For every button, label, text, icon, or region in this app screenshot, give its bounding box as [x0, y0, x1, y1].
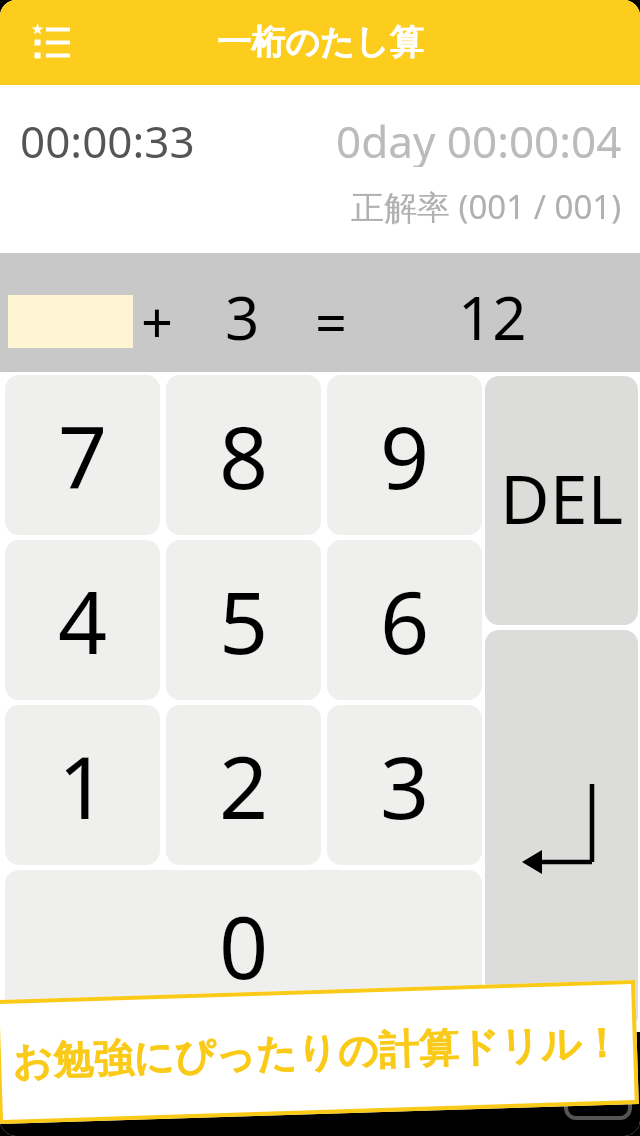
staticText: 一桁のたし算: [217, 21, 424, 64]
button[interactable]: 0: [5, 870, 482, 1020]
staticText: 6: [380, 562, 430, 679]
staticText: 00:00:33: [20, 111, 195, 167]
button[interactable]: 1: [5, 705, 160, 865]
button[interactable]: 5: [166, 540, 321, 700]
button[interactable]: 6: [327, 540, 482, 700]
staticText: 1: [58, 727, 108, 844]
button[interactable]: DEL: [485, 376, 638, 625]
button[interactable]: 7: [5, 375, 160, 535]
button[interactable]: 3: [327, 705, 482, 865]
staticText: 9: [380, 397, 430, 514]
staticText: 4: [58, 562, 108, 679]
button[interactable]: [485, 630, 638, 1030]
button[interactable]: 4: [5, 540, 160, 700]
staticText: 正解率 (001 / 001): [351, 184, 622, 228]
staticText: 5: [219, 562, 269, 679]
staticText: お勉強にぴったりの計算ドリル！: [11, 1017, 623, 1086]
staticText: 8: [219, 397, 269, 514]
staticText: +: [141, 283, 174, 359]
staticText: 7: [58, 397, 108, 514]
staticText: 0: [219, 887, 269, 1004]
button[interactable]: 8: [166, 375, 321, 535]
button[interactable]: [26, 18, 78, 66]
staticText: 2: [219, 727, 269, 844]
button[interactable]: お勉強にぴったりの計算ドリル！: [0, 980, 639, 1124]
staticText: =: [315, 283, 348, 359]
staticText: 0day 00:00:04: [336, 111, 622, 167]
button[interactable]: 9: [327, 375, 482, 535]
staticText: DEL: [500, 451, 624, 544]
staticText: 3: [380, 727, 430, 844]
button[interactable]: 2: [166, 705, 321, 865]
staticText: 3: [225, 276, 260, 358]
staticText: 12: [458, 276, 527, 358]
